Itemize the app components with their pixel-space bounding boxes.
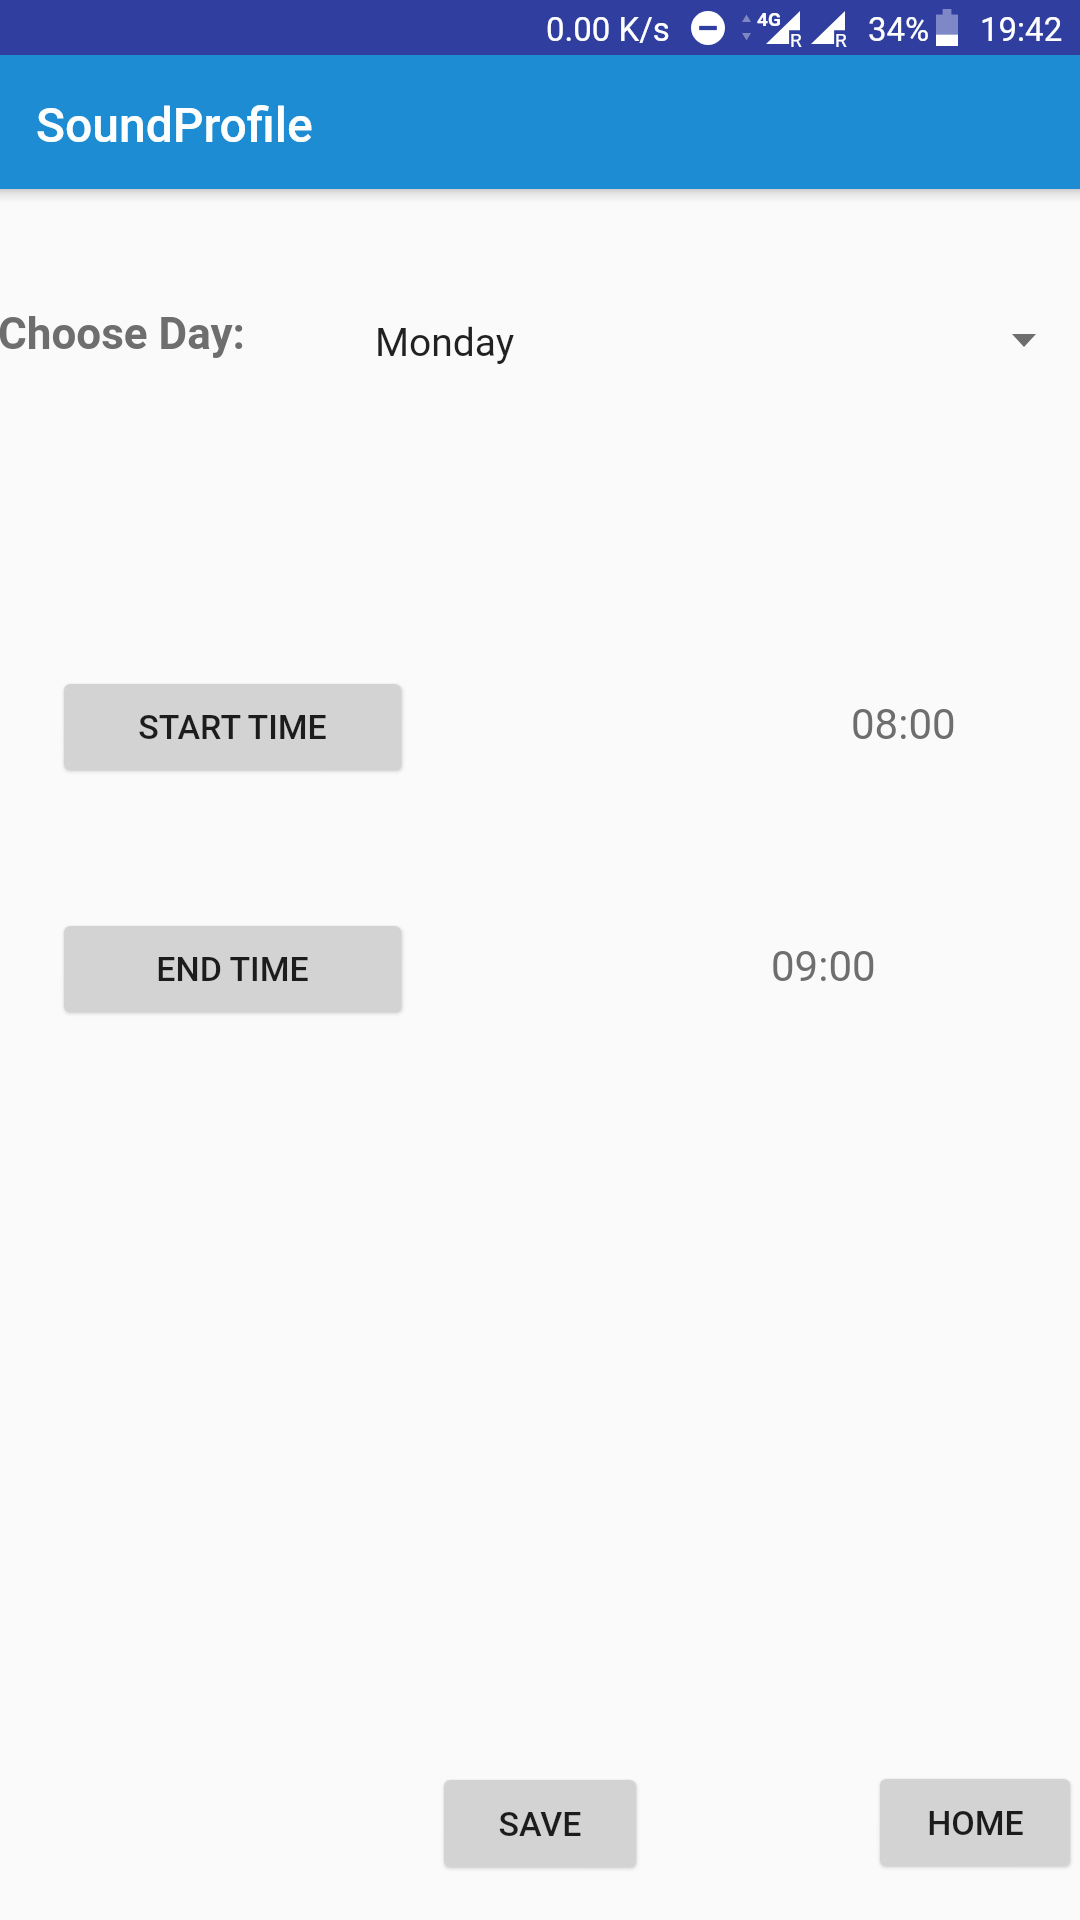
button[interactable]: END TIME — [64, 926, 401, 1012]
staticText: R — [790, 29, 802, 51]
button[interactable]: Monday — [370, 266, 1070, 418]
staticText: 34% — [868, 10, 930, 49]
staticText: Monday — [375, 320, 515, 366]
staticText: START TIME — [138, 707, 327, 747]
button[interactable]: SAVE — [444, 1780, 636, 1867]
staticText: 0.00 K/s — [546, 10, 670, 49]
button[interactable]: HOME — [880, 1779, 1070, 1866]
staticText: END TIME — [156, 949, 309, 989]
staticText: SAVE — [498, 1804, 582, 1844]
staticText: 09:00 — [771, 942, 876, 991]
other: Open day dropdown — [1012, 334, 1036, 347]
staticText: 08:00 — [851, 700, 956, 749]
button[interactable]: START TIME — [64, 684, 401, 770]
staticText: HOME — [927, 1803, 1024, 1843]
staticText: 4G — [757, 8, 781, 30]
staticText: SoundProfile — [36, 97, 313, 153]
staticText: R — [835, 29, 847, 51]
staticText: 19:42 — [980, 10, 1063, 49]
staticText: Choose Day: — [0, 308, 246, 360]
